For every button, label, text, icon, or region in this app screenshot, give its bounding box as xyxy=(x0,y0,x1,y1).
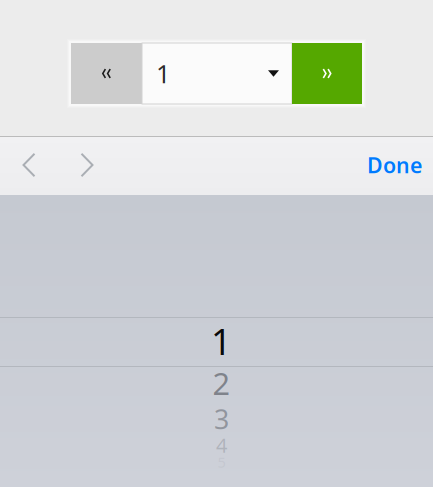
button[interactable]: 3 xyxy=(5,399,433,439)
staticText: 1 xyxy=(156,57,170,90)
button[interactable]: 2 xyxy=(5,363,433,403)
button[interactable]: 1 xyxy=(142,43,292,104)
button[interactable]: Next page xyxy=(292,43,362,104)
staticText: 2 xyxy=(212,363,230,403)
button[interactable]: Previous field xyxy=(0,136,58,194)
button[interactable]: Done xyxy=(356,136,433,194)
button[interactable]: 1 xyxy=(5,321,433,361)
staticText: 5 xyxy=(217,452,225,472)
button[interactable]: Next field xyxy=(58,136,116,194)
button[interactable]: Previous page xyxy=(71,43,142,104)
staticText: 4 xyxy=(216,432,227,458)
staticText: 3 xyxy=(214,401,229,437)
staticText: Done xyxy=(367,151,422,179)
staticText: 1 xyxy=(211,317,232,365)
